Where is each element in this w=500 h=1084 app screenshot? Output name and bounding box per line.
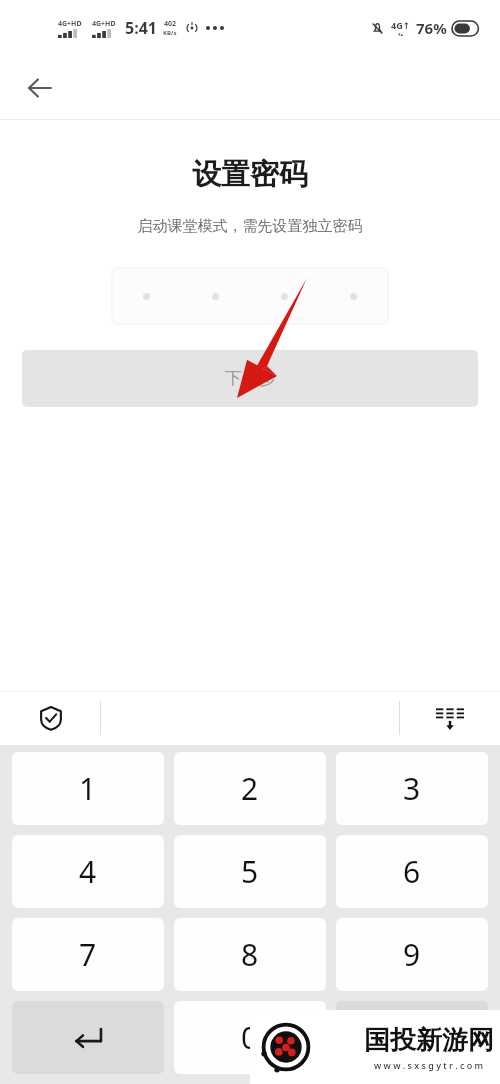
- button[interactable]: 0: [174, 1001, 326, 1074]
- button[interactable]: Enter: [12, 1001, 164, 1074]
- staticText: 国投新游网: [364, 1024, 494, 1057]
- staticText: 4G+HD: [92, 19, 116, 29]
- button[interactable]: 9: [336, 918, 488, 991]
- staticText: 下一步: [225, 368, 276, 389]
- button[interactable]: 4: [12, 835, 164, 908]
- staticText: 4G+HD: [58, 19, 82, 29]
- button[interactable]: [112, 268, 388, 324]
- staticText: KB/s: [163, 29, 177, 37]
- staticText: 4: [79, 851, 97, 892]
- staticText: 5:41: [125, 17, 157, 39]
- staticText: 4G↑: [391, 19, 411, 31]
- button[interactable]: 3: [336, 752, 488, 825]
- staticText: 设置密码: [0, 156, 500, 193]
- staticText: 7: [79, 934, 97, 975]
- staticText: 402: [164, 19, 177, 29]
- button[interactable]: 1: [12, 752, 164, 825]
- button[interactable]: Secure input: [30, 697, 72, 739]
- button[interactable]: 下一步: [22, 350, 478, 407]
- button[interactable]: 2: [174, 752, 326, 825]
- staticText: 8: [241, 934, 259, 975]
- staticText: 3: [403, 768, 421, 809]
- staticText: 6: [403, 851, 421, 892]
- staticText: 9: [403, 934, 421, 975]
- button[interactable]: Hide keyboard: [428, 696, 472, 740]
- button[interactable]: 5: [174, 835, 326, 908]
- staticText: 1: [79, 768, 97, 809]
- button[interactable]: 6: [336, 835, 488, 908]
- button[interactable]: Delete: [336, 1001, 488, 1074]
- staticText: ▾▴: [398, 31, 404, 37]
- button[interactable]: 7: [12, 918, 164, 991]
- button[interactable]: Back: [14, 62, 66, 114]
- staticText: 启动课堂模式，需先设置独立密码: [0, 217, 500, 236]
- staticText: w w w . s x s g y t r . c o m: [374, 1059, 484, 1071]
- staticText: 76%: [416, 18, 447, 38]
- button[interactable]: 8: [174, 918, 326, 991]
- staticText: 5: [241, 851, 259, 892]
- staticText: 0: [241, 1017, 259, 1058]
- staticText: 2: [241, 768, 259, 809]
